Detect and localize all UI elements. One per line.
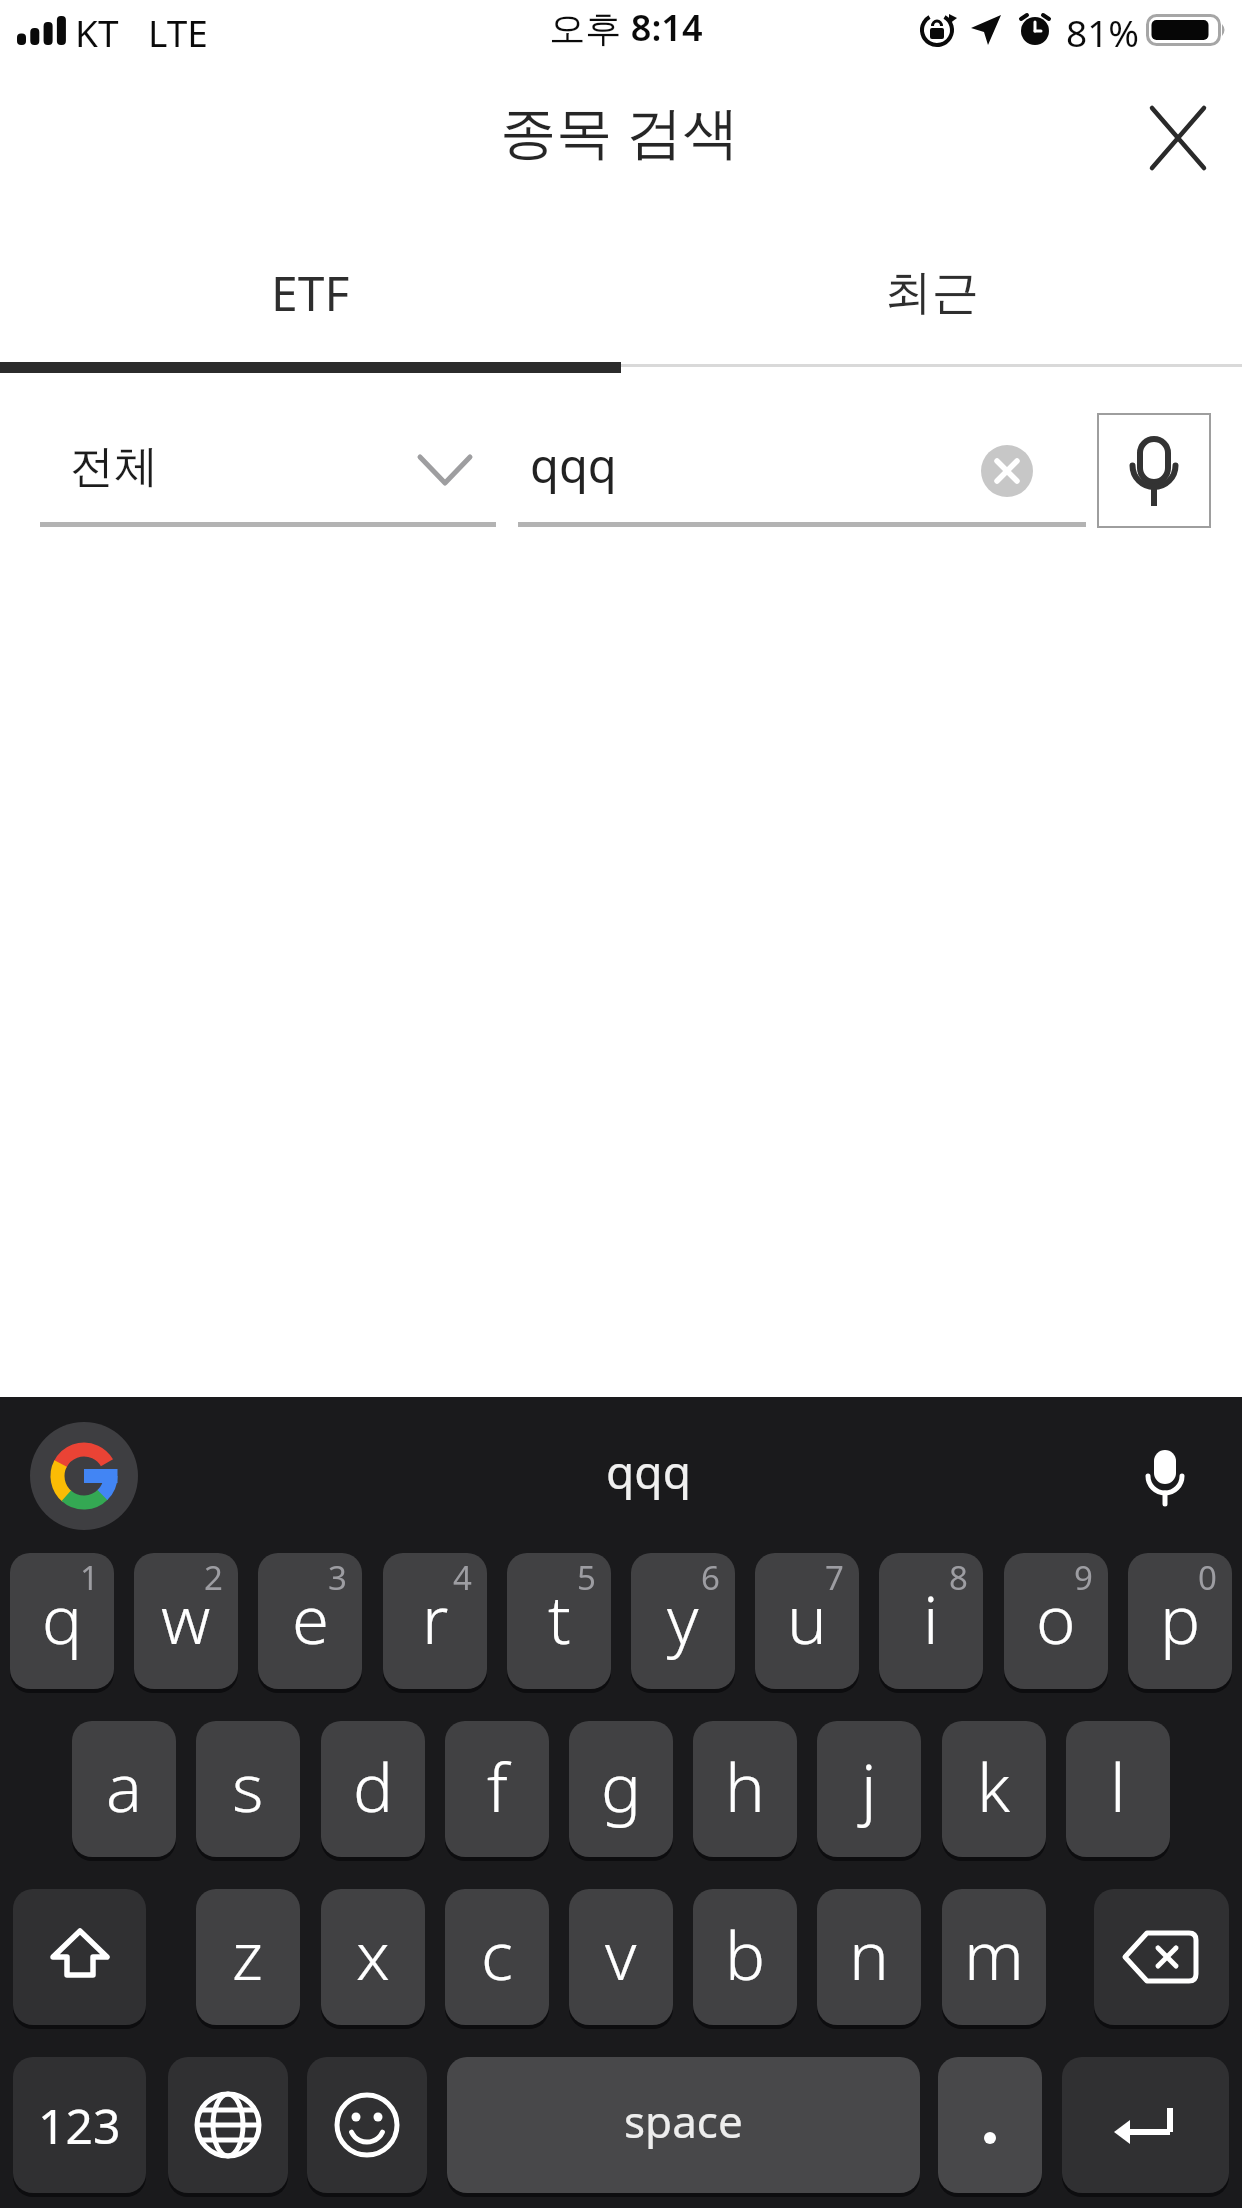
staticText: d: [353, 1740, 394, 1831]
button[interactable]: a: [72, 1721, 176, 1857]
button[interactable]: qqq: [518, 410, 1086, 528]
staticText: KT: [75, 7, 119, 57]
staticText: k: [977, 1740, 1011, 1831]
button[interactable]: l: [1066, 1721, 1170, 1857]
button[interactable]: [1152, 108, 1204, 168]
button[interactable]: m: [942, 1889, 1046, 2025]
button[interactable]: 전체: [40, 410, 496, 528]
staticText: n: [849, 1908, 889, 1999]
staticText: 2: [204, 1555, 223, 1600]
button[interactable]: e: [258, 1553, 362, 1689]
button[interactable]: 최근: [621, 232, 1242, 352]
staticText: m: [964, 1908, 1024, 1999]
button[interactable]: z: [196, 1889, 300, 2025]
button[interactable]: p: [1128, 1553, 1232, 1689]
button[interactable]: c: [445, 1889, 549, 2025]
staticText: i: [923, 1572, 939, 1663]
button[interactable]: o: [1004, 1553, 1108, 1689]
button[interactable]: [30, 1422, 138, 1530]
staticText: 오후 8:14: [549, 3, 703, 52]
button[interactable]: h: [693, 1721, 797, 1857]
staticText: 1: [80, 1555, 99, 1600]
staticText: x: [356, 1908, 390, 1999]
staticText: 81%: [1066, 7, 1140, 57]
staticText: qqq: [530, 433, 617, 497]
staticText: q: [42, 1572, 83, 1663]
button[interactable]: [1097, 413, 1211, 528]
staticText: 종목 검색: [500, 92, 739, 168]
button[interactable]: 123: [13, 2057, 146, 2193]
button[interactable]: [938, 2057, 1042, 2193]
button[interactable]: n: [817, 1889, 921, 2025]
staticText: 최근: [885, 263, 979, 322]
staticText: b: [725, 1908, 766, 1999]
staticText: p: [1160, 1572, 1201, 1663]
staticText: space: [624, 2091, 743, 2151]
button[interactable]: [1094, 1889, 1229, 2025]
button[interactable]: v: [569, 1889, 673, 2025]
button[interactable]: f: [445, 1721, 549, 1857]
staticText: s: [232, 1740, 264, 1831]
button[interactable]: [1062, 2057, 1229, 2193]
staticText: y: [667, 1572, 699, 1663]
button[interactable]: g: [569, 1721, 673, 1857]
staticText: 4: [453, 1555, 472, 1600]
staticText: 123: [38, 2093, 121, 2158]
button[interactable]: space: [447, 2057, 920, 2193]
button[interactable]: s: [196, 1721, 300, 1857]
staticText: v: [605, 1908, 637, 1999]
staticText: qqq: [606, 1440, 691, 1503]
button[interactable]: [13, 1889, 146, 2025]
staticText: 8: [949, 1555, 968, 1600]
staticText: g: [601, 1740, 642, 1831]
staticText: u: [787, 1572, 827, 1663]
staticText: 3: [328, 1555, 347, 1600]
button[interactable]: t: [507, 1553, 611, 1689]
staticText: 0: [1198, 1555, 1217, 1600]
staticText: r: [422, 1572, 449, 1663]
button[interactable]: ETF: [0, 232, 621, 352]
staticText: 6: [701, 1555, 720, 1600]
staticText: c: [481, 1908, 513, 1999]
button[interactable]: j: [817, 1721, 921, 1857]
staticText: j: [861, 1740, 877, 1831]
button[interactable]: r: [383, 1553, 487, 1689]
button[interactable]: i: [879, 1553, 983, 1689]
staticText: w: [161, 1572, 211, 1663]
staticText: f: [487, 1740, 508, 1831]
staticText: z: [232, 1908, 264, 1999]
staticText: 7: [825, 1555, 844, 1600]
staticText: ETF: [271, 260, 350, 325]
button[interactable]: y: [631, 1553, 735, 1689]
button[interactable]: k: [942, 1721, 1046, 1857]
staticText: e: [292, 1572, 329, 1663]
staticText: l: [1110, 1740, 1126, 1831]
button[interactable]: x: [321, 1889, 425, 2025]
button[interactable]: [1143, 1450, 1187, 1504]
button[interactable]: w: [134, 1553, 238, 1689]
staticText: o: [1036, 1572, 1076, 1663]
staticText: LTE: [148, 7, 208, 57]
button[interactable]: [307, 2057, 427, 2193]
staticText: 9: [1074, 1555, 1093, 1600]
staticText: 전체: [70, 439, 158, 494]
button[interactable]: [168, 2057, 288, 2193]
button[interactable]: d: [321, 1721, 425, 1857]
staticText: t: [548, 1572, 571, 1663]
staticText: 5: [577, 1555, 596, 1600]
staticText: h: [725, 1740, 765, 1831]
button[interactable]: b: [693, 1889, 797, 2025]
staticText: a: [106, 1740, 142, 1831]
button[interactable]: u: [755, 1553, 859, 1689]
button[interactable]: q: [10, 1553, 114, 1689]
